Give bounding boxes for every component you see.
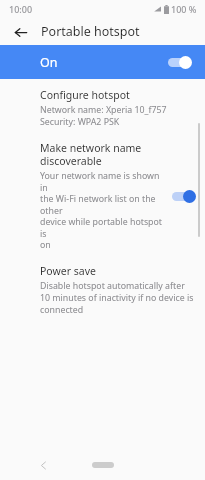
staticText: Network name: Xperia 10_f757 — [40, 104, 167, 116]
button[interactable]: Back — [31, 453, 55, 477]
staticText: 10:00 — [9, 3, 33, 15]
staticText: 10 minutes of inactivity if no device is — [40, 292, 194, 304]
staticText: 100 % — [171, 3, 197, 15]
button[interactable]: Power save — [0, 264, 205, 316]
button[interactable]: Back — [7, 19, 33, 45]
button[interactable]: Make network name discoverable toggle — [170, 187, 198, 205]
staticText: device while portable hotspot is — [40, 216, 167, 239]
staticText: on — [40, 239, 51, 251]
staticText: connected — [40, 304, 84, 316]
button[interactable]: On — [0, 45, 205, 79]
staticText: Security: WPA2 PSK — [40, 116, 120, 128]
button[interactable]: Home — [87, 457, 119, 473]
staticText: On — [40, 54, 58, 71]
staticText: Your network name is shown in — [40, 170, 167, 193]
staticText: the Wi-Fi network list on the other — [40, 193, 167, 216]
button[interactable]: Make network name discoverable — [0, 141, 205, 251]
button[interactable]: Configure hotspot — [0, 88, 205, 128]
staticText: Make network name discoverable — [40, 141, 142, 168]
staticText: Power save — [40, 264, 96, 278]
staticText: Portable hotspot — [41, 23, 140, 40]
staticText: Disable hotspot automatically after — [40, 280, 185, 292]
staticText: Configure hotspot — [40, 88, 130, 102]
